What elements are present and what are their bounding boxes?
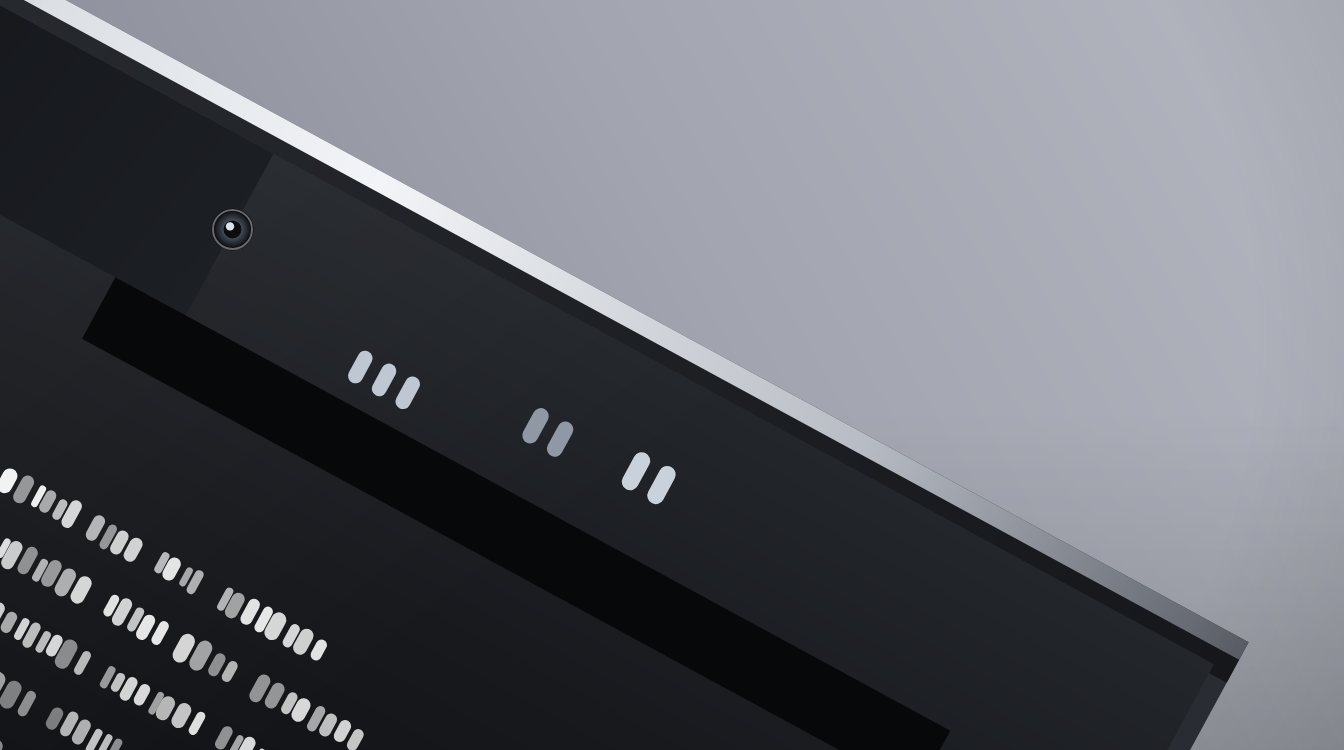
button[interactable]: Power button <box>1145 615 1270 700</box>
button[interactable]: Status bar <box>250 35 590 185</box>
button[interactable]: Message text <box>55 185 895 545</box>
